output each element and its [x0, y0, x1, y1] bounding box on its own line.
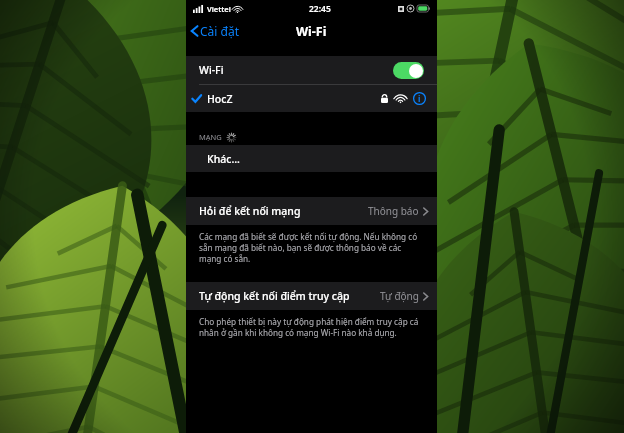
staticText: Wi-Fi — [199, 63, 224, 77]
staticText: Cài đặt — [200, 23, 240, 39]
staticText: Cho phép thiết bị này tự động phát hiện … — [199, 316, 424, 338]
staticText: i — [418, 93, 421, 104]
button[interactable]: Tự động kết nối điểm truy cập — [186, 282, 437, 310]
other: Secured — [381, 94, 388, 103]
button[interactable]: Wi-Fi — [186, 56, 437, 84]
button[interactable]: Hỏi để kết nối mạng — [186, 197, 437, 225]
button[interactable]: Cài đặt — [186, 20, 248, 42]
staticText: Thông báo — [368, 204, 419, 218]
staticText: Hỏi để kết nối mạng — [199, 204, 301, 218]
staticText: HocZ — [207, 92, 233, 106]
button[interactable]: Khác... — [186, 145, 437, 172]
button[interactable] — [393, 62, 424, 79]
button[interactable]: More info — [413, 92, 426, 105]
staticText: Các mạng đã biết sẽ được kết nối tự động… — [199, 231, 424, 264]
staticText: Khác... — [207, 152, 240, 166]
other: Signal — [395, 94, 406, 103]
staticText: MẠNG — [199, 132, 222, 142]
staticText: Wi-Fi — [296, 23, 327, 40]
staticText: 22:45 — [309, 3, 331, 15]
staticText: Tự động — [380, 289, 419, 303]
button[interactable]: HocZ — [186, 85, 437, 112]
staticText: Viettel — [207, 4, 231, 14]
staticText: Tự động kết nối điểm truy cập — [199, 289, 350, 303]
